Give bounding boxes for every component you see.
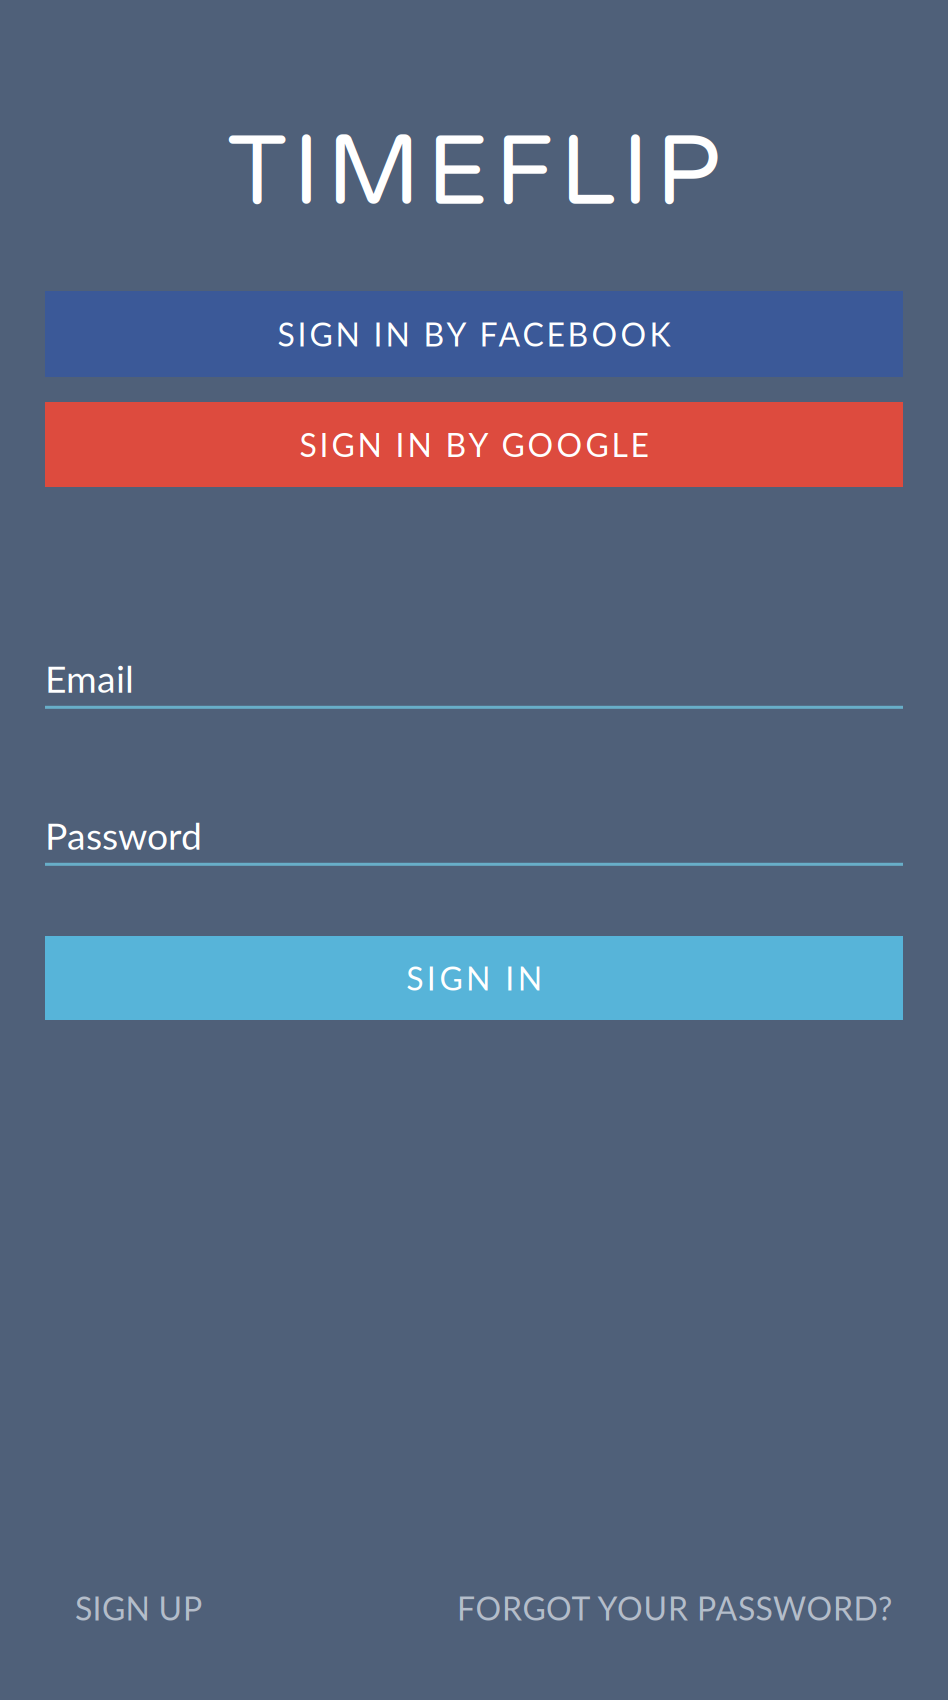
staticText: Password — [45, 813, 202, 858]
staticText: SIGN IN BY FACEBOOK — [277, 315, 670, 353]
staticText: SIGN UP — [75, 1589, 202, 1627]
staticText: Email — [45, 656, 134, 701]
staticText: SIGN IN — [406, 959, 542, 997]
button[interactable]: SIGN UP — [75, 1578, 235, 1638]
button[interactable]: FORGOT YOUR PASSWORD? — [457, 1578, 893, 1638]
staticText: TIMEFLIP — [227, 114, 720, 232]
button[interactable]: SIGN IN BY FACEBOOK — [45, 291, 903, 377]
button[interactable]: SIGN IN — [45, 936, 903, 1020]
staticText: FORGOT YOUR PASSWORD? — [457, 1589, 892, 1627]
staticText: SIGN IN BY GOOGLE — [299, 425, 648, 464]
button[interactable]: SIGN IN BY GOOGLE — [45, 402, 903, 487]
